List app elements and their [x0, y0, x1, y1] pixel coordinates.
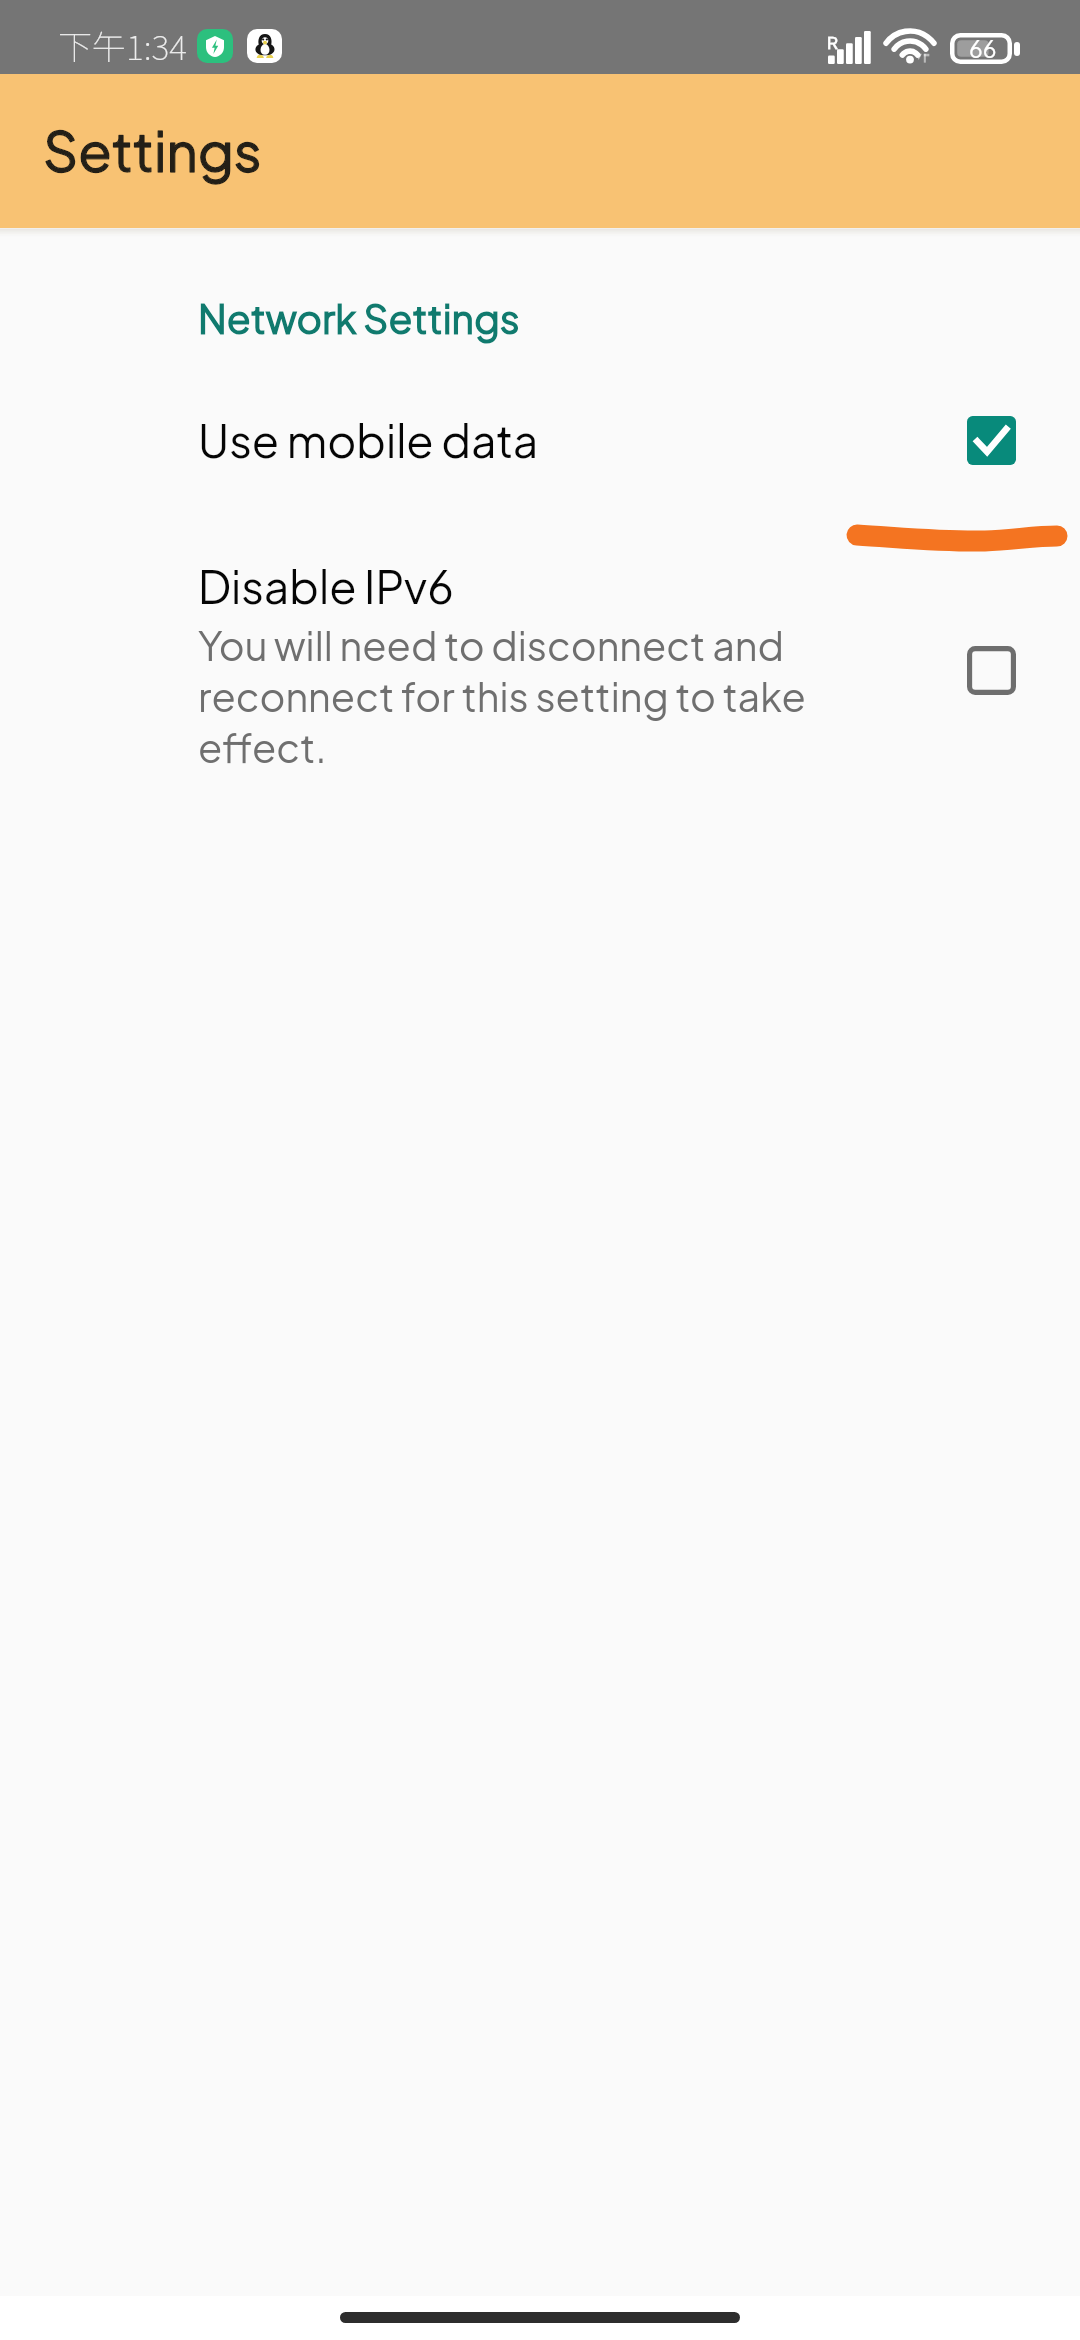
other: Linux app notification	[247, 29, 282, 63]
staticText: Network Settings	[198, 294, 520, 343]
staticText: Disable IPv6	[198, 558, 454, 614]
staticText: 下午1:34	[58, 21, 187, 70]
button[interactable]: Setting disabled	[943, 622, 1039, 718]
staticText: You will need to disconnect and reconnec…	[198, 620, 885, 772]
staticText: R	[827, 31, 838, 52]
staticText: 66	[969, 34, 997, 63]
button[interactable]: Setting enabled	[943, 392, 1039, 488]
staticText: Settings	[43, 115, 262, 184]
other: Wi-Fi	[887, 30, 933, 64]
staticText: Settings	[43, 115, 262, 184]
button[interactable]: Disable IPv6	[0, 550, 1080, 780]
button[interactable]: Use mobile data	[0, 380, 1080, 500]
other: Battery 66 percent	[950, 33, 1020, 64]
other: Security status	[197, 29, 233, 63]
other: Mobile signal strength	[823, 31, 873, 64]
staticText: Use mobile data	[198, 412, 943, 468]
